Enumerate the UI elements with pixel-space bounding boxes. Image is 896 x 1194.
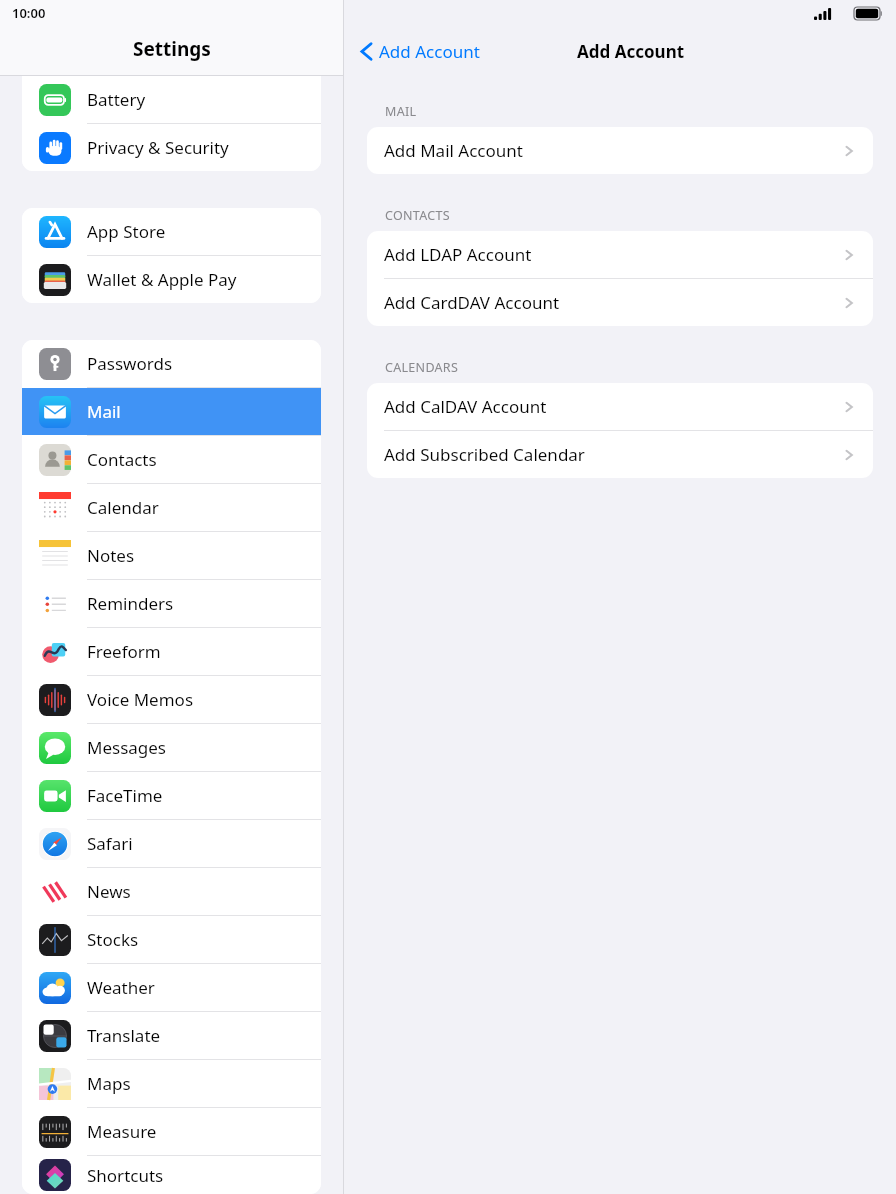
- staticText: Reminders: [87, 592, 174, 615]
- staticText: Contacts: [87, 448, 157, 471]
- staticText: Add Account: [379, 40, 480, 63]
- button[interactable]: Add CalDAV Account: [367, 383, 873, 430]
- button[interactable]: Safari: [22, 820, 321, 867]
- staticText: Add LDAP Account: [384, 243, 532, 266]
- staticText: Shortcuts: [87, 1164, 164, 1187]
- staticText: Stocks: [87, 928, 139, 951]
- staticText: Translate: [87, 1024, 161, 1047]
- button[interactable]: Stocks: [22, 916, 321, 963]
- button[interactable]: Wallet & Apple Pay: [22, 256, 321, 303]
- staticText: CONTACTS: [385, 207, 450, 224]
- staticText: Add Account: [577, 40, 685, 63]
- button[interactable]: Freeform: [22, 628, 321, 675]
- button[interactable]: Passwords: [22, 340, 321, 387]
- button[interactable]: Add Mail Account: [367, 127, 873, 174]
- button[interactable]: Voice Memos: [22, 676, 321, 723]
- button[interactable]: Add CardDAV Account: [367, 279, 873, 326]
- button[interactable]: FaceTime: [22, 772, 321, 819]
- button[interactable]: Add LDAP Account: [367, 231, 873, 278]
- staticText: MAIL: [385, 103, 417, 120]
- button[interactable]: Weather: [22, 964, 321, 1011]
- staticText: Calendar: [87, 496, 159, 519]
- button[interactable]: Contacts: [22, 436, 321, 483]
- button[interactable]: Battery: [22, 76, 321, 123]
- staticText: Freeform: [87, 640, 161, 663]
- button[interactable]: Mail: [22, 388, 321, 435]
- staticText: Add Mail Account: [384, 139, 523, 162]
- staticText: 10:00: [12, 4, 46, 22]
- button[interactable]: Calendar: [22, 484, 321, 531]
- button[interactable]: Translate: [22, 1012, 321, 1059]
- staticText: Safari: [87, 832, 133, 855]
- staticText: Wallet & Apple Pay: [87, 268, 237, 291]
- staticText: Passwords: [87, 352, 173, 375]
- button[interactable]: Privacy & Security: [22, 124, 321, 171]
- button[interactable]: Messages: [22, 724, 321, 771]
- button[interactable]: Notes: [22, 532, 321, 579]
- staticText: Voice Memos: [87, 688, 194, 711]
- staticText: Settings: [133, 36, 211, 62]
- staticText: Notes: [87, 544, 135, 567]
- button[interactable]: Add Account: [344, 34, 490, 69]
- staticText: Measure: [87, 1120, 157, 1143]
- staticText: FaceTime: [87, 784, 163, 807]
- staticText: Mail: [87, 400, 121, 423]
- staticText: Add CalDAV Account: [384, 395, 547, 418]
- staticText: Messages: [87, 736, 167, 759]
- staticText: Battery: [87, 88, 146, 111]
- button[interactable]: Reminders: [22, 580, 321, 627]
- staticText: News: [87, 880, 131, 903]
- staticText: Maps: [87, 1072, 131, 1095]
- button[interactable]: Measure: [22, 1108, 321, 1155]
- button[interactable]: News: [22, 868, 321, 915]
- staticText: Weather: [87, 976, 155, 999]
- staticText: CALENDARS: [385, 359, 459, 376]
- button[interactable]: Add Subscribed Calendar: [367, 431, 873, 478]
- staticText: Add Subscribed Calendar: [384, 443, 585, 466]
- button[interactable]: Shortcuts: [22, 1156, 321, 1194]
- staticText: App Store: [87, 220, 166, 243]
- button[interactable]: App Store: [22, 208, 321, 255]
- staticText: Privacy & Security: [87, 136, 229, 159]
- staticText: Add CardDAV Account: [384, 291, 560, 314]
- button[interactable]: Maps: [22, 1060, 321, 1107]
